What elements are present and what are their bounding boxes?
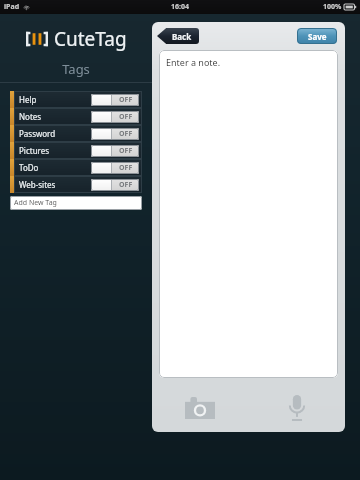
staticText: OFF	[119, 112, 133, 122]
button[interactable]: OFF	[91, 179, 139, 191]
button[interactable]: ToDo	[10, 159, 142, 176]
staticText: Password	[19, 128, 91, 139]
staticText: Enter a note.	[166, 56, 221, 68]
staticText: 100%	[323, 2, 342, 12]
button[interactable]: OFF	[91, 128, 139, 140]
button[interactable]: Pictures	[10, 142, 142, 159]
staticText: Add New Tag	[14, 198, 57, 208]
button[interactable]: Back	[157, 28, 199, 44]
button[interactable]: Camera	[152, 384, 248, 432]
staticText: Save	[308, 31, 327, 42]
staticText: Tags	[0, 60, 152, 78]
button[interactable]: OFF	[91, 111, 139, 123]
button[interactable]: Enter a note.	[159, 50, 338, 378]
staticText: Notes	[19, 111, 91, 122]
staticText: Back	[172, 31, 192, 42]
staticText: OFF	[119, 95, 133, 105]
staticText: OFF	[119, 146, 133, 156]
staticText: Help	[19, 94, 91, 105]
button[interactable]: Save	[297, 28, 337, 44]
button[interactable]: OFF	[91, 94, 139, 106]
staticText: Pictures	[19, 145, 91, 156]
staticText: iPad	[4, 2, 20, 12]
button[interactable]: OFF	[91, 162, 139, 174]
staticText: CuteTag	[54, 26, 127, 52]
staticText: OFF	[119, 163, 133, 173]
button[interactable]: Notes	[10, 108, 142, 125]
button[interactable]: Record audio	[248, 384, 345, 432]
staticText: Web-sites	[19, 179, 91, 190]
staticText: OFF	[119, 129, 133, 139]
button[interactable]: Help	[10, 91, 142, 108]
staticText: ToDo	[19, 162, 91, 173]
button[interactable]: Web-sites	[10, 176, 142, 193]
button[interactable]: Add New Tag	[10, 196, 142, 210]
staticText: 16:04	[171, 2, 189, 12]
button[interactable]: OFF	[91, 145, 139, 157]
button[interactable]: Password	[10, 125, 142, 142]
staticText: OFF	[119, 180, 133, 190]
